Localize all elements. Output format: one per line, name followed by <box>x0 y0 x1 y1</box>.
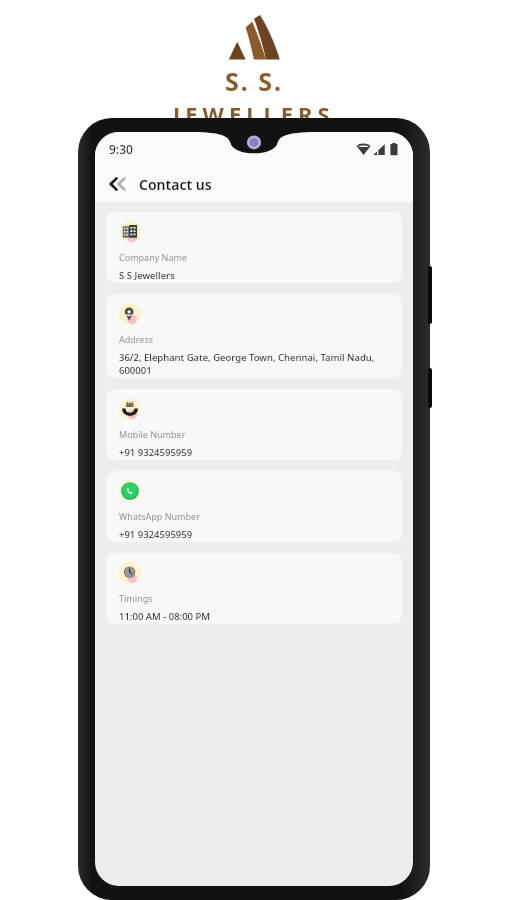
staticText: Timings <box>119 592 153 604</box>
button[interactable]: WhatsApp number <box>106 471 402 542</box>
staticText: 9:30 <box>109 141 133 157</box>
button[interactable]: Timings <box>106 553 402 624</box>
button[interactable]: Address <box>106 294 402 378</box>
staticText: S S Jewellers <box>119 269 175 282</box>
other: Mobile number <box>119 398 141 420</box>
other: Company <box>119 221 141 243</box>
staticText: +91 9324595959 <box>119 446 193 459</box>
other: WhatsApp number <box>119 480 141 502</box>
staticText: 36/2, Elephant Gate, George Town, Chenna… <box>119 351 375 377</box>
button[interactable]: Back <box>103 169 133 199</box>
staticText: S. S. <box>225 64 284 98</box>
staticText: Mobile Number <box>119 428 186 440</box>
other: Address <box>119 303 141 325</box>
staticText: JEWELLERS <box>173 99 335 118</box>
staticText: WhatsApp Number <box>119 510 200 522</box>
button[interactable]: Mobile number <box>106 389 402 460</box>
staticText: Company Name <box>119 251 188 263</box>
other: Timings <box>119 562 141 584</box>
staticText: Contact us <box>139 175 212 194</box>
staticText: +91 9324595959 <box>119 528 193 541</box>
staticText: Address <box>119 333 154 345</box>
staticText: 11:00 AM - 08:00 PM <box>119 610 211 623</box>
button[interactable]: Company <box>106 212 402 283</box>
